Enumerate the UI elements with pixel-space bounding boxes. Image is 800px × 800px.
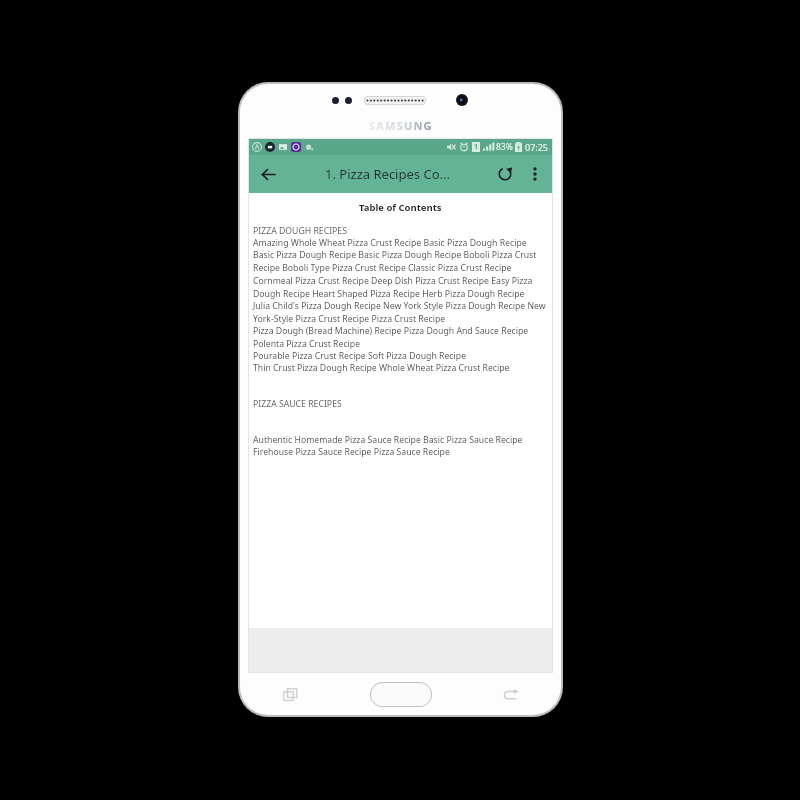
staticText: SAMSUNG — [369, 118, 433, 133]
staticText: Authentic Homemade Pizza Sauce Recipe Ba… — [253, 434, 523, 446]
button[interactable]: Back — [461, 673, 561, 715]
staticText: Basic Pizza Dough Recipe Basic Pizza Dou… — [253, 249, 546, 300]
staticText: PIZZA SAUCE RECIPES — [253, 398, 342, 410]
staticText: PIZZA DOUGH RECIPES — [253, 225, 347, 237]
button[interactable]: Home — [341, 673, 461, 715]
staticText: 83% — [496, 141, 513, 153]
staticText: Amazing Whole Wheat Pizza Crust Recipe B… — [253, 237, 527, 249]
staticText: 1 — [474, 142, 479, 152]
button[interactable]: Back — [249, 155, 287, 193]
button[interactable]: Recents — [240, 673, 341, 715]
staticText: 1. Pizza Recipes Co... — [325, 165, 450, 183]
staticText: Pourable Pizza Crust Recipe Soft Pizza D… — [253, 350, 467, 362]
staticText: Thin Crust Pizza Dough Recipe Whole Whea… — [253, 362, 510, 374]
staticText: Julia Child's Pizza Dough Recipe New Yor… — [253, 300, 546, 325]
button[interactable]: Refresh — [488, 155, 522, 193]
staticText: Table of Contents — [359, 201, 442, 214]
staticText: 07:25 — [525, 141, 549, 153]
staticText: Firehouse Pizza Sauce Recipe Pizza Sauce… — [253, 446, 450, 458]
staticText: Pizza Dough (Bread Machine) Recipe Pizza… — [253, 325, 546, 350]
button[interactable]: More options — [522, 155, 548, 193]
